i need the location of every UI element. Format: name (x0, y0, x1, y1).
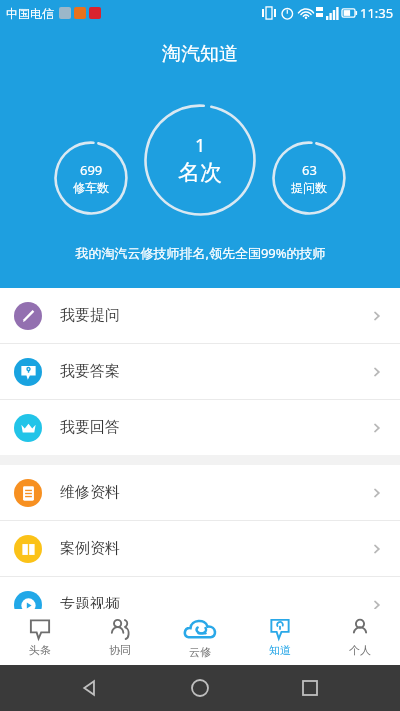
staticText: 案例资料 (60, 539, 120, 558)
staticText: 头条 (29, 643, 51, 657)
button[interactable]: 专题视频 (0, 577, 400, 632)
staticText: 699 (80, 161, 103, 179)
staticText: 我的淘汽云修技师排名,领先全国99%的技师 (75, 244, 326, 262)
staticText: 我要提问 (60, 306, 120, 325)
staticText: 维修资料 (60, 483, 120, 502)
button[interactable]: 云修 (160, 609, 240, 665)
staticText: 我要回答 (60, 418, 120, 437)
staticText: 11:35 (360, 4, 394, 22)
staticText: 淘汽知道 (162, 42, 238, 66)
staticText: 63 (302, 161, 317, 179)
button[interactable]: 个人 (320, 609, 400, 665)
button[interactable]: Home (180, 668, 220, 708)
button[interactable]: 我要答案 (0, 344, 400, 399)
staticText: 提问数 (291, 180, 327, 195)
staticText: 1 (195, 133, 206, 158)
button[interactable]: 头条 (0, 609, 80, 665)
staticText: 协同 (109, 643, 131, 657)
button[interactable]: Recent apps (290, 668, 330, 708)
button[interactable]: 知道 (240, 609, 320, 665)
button[interactable]: Back (70, 668, 110, 708)
button[interactable]: 维修资料 (0, 465, 400, 520)
button[interactable]: 我要提问 (0, 288, 400, 343)
button[interactable]: 案例资料 (0, 521, 400, 576)
button[interactable]: 我要回答 (0, 400, 400, 455)
button[interactable]: 协同 (80, 609, 160, 665)
staticText: 知道 (269, 643, 291, 657)
staticText: 个人 (349, 643, 371, 657)
staticText: 云修 (189, 645, 211, 659)
staticText: 名次 (178, 159, 222, 187)
staticText: 专题视频 (60, 595, 120, 614)
staticText: 中国电信 (6, 6, 54, 21)
staticText: 修车数 (73, 180, 109, 195)
staticText: 我要答案 (60, 362, 120, 381)
